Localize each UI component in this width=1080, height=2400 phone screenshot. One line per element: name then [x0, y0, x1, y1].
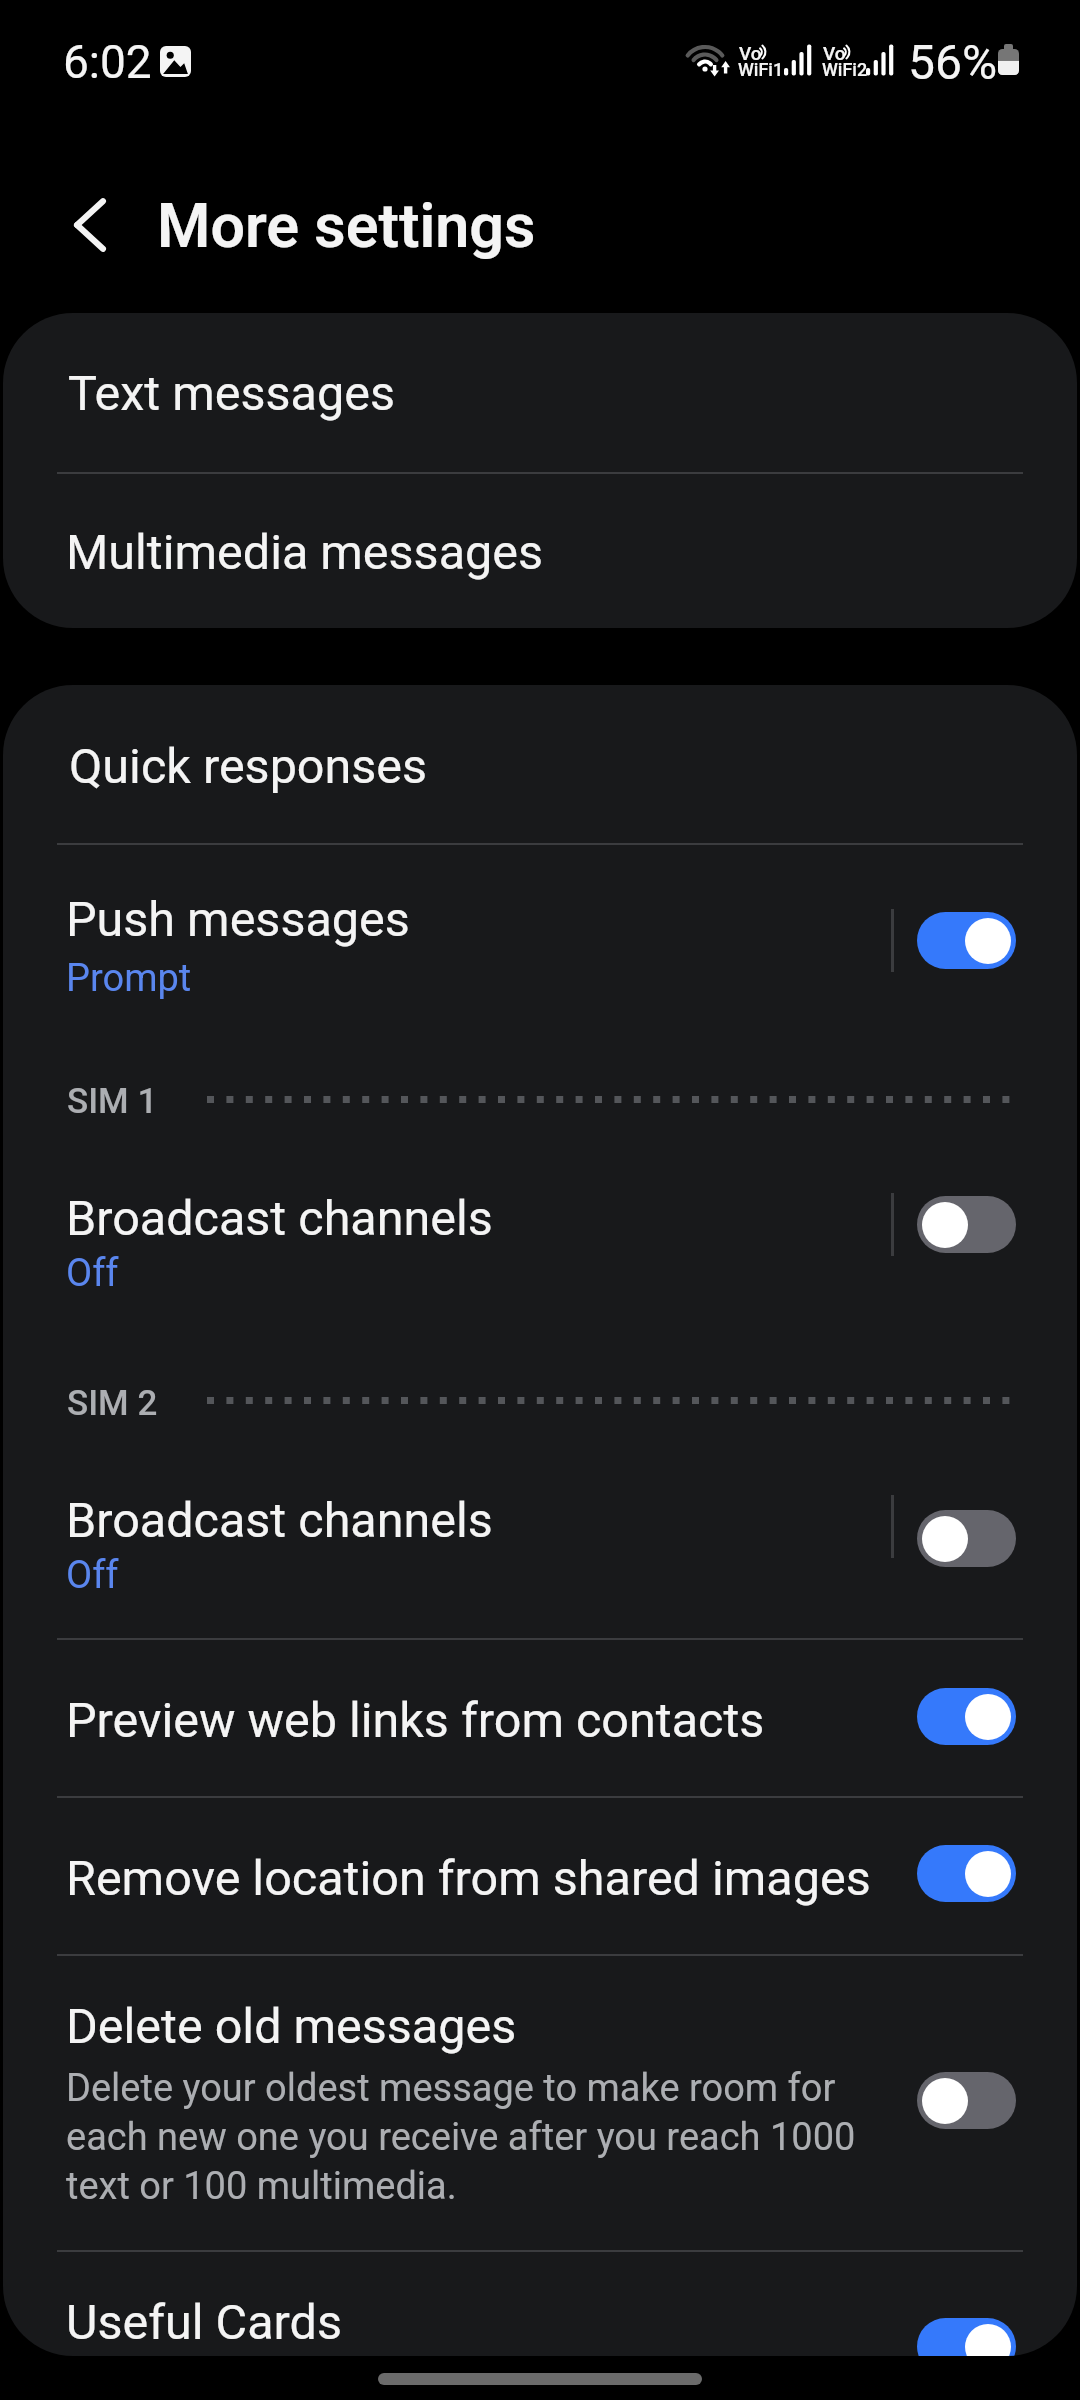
staticText: WiFi2 — [822, 59, 868, 80]
button[interactable]: Switch on — [917, 912, 1016, 969]
button[interactable]: Text messages — [3, 313, 1077, 472]
button[interactable]: Switch off — [917, 1196, 1016, 1253]
staticText: Text messages — [68, 365, 395, 422]
button[interactable]: Useful Cards — [3, 2252, 1077, 2356]
staticText: Delete your oldest message to make room … — [66, 2066, 906, 2208]
staticText: Vo — [739, 42, 762, 64]
button[interactable]: Push messages — [3, 845, 1077, 1085]
button[interactable]: Delete old messages — [3, 1956, 1077, 2250]
staticText: Preview web links from contacts — [66, 1692, 765, 1749]
button[interactable]: Quick responses — [3, 685, 1077, 843]
staticText: Broadcast channels — [66, 1190, 493, 1247]
staticText: 56% — [908, 34, 998, 90]
staticText: Vo — [823, 42, 846, 64]
button[interactable]: Switch off — [917, 2072, 1016, 2129]
button[interactable]: Switch on — [917, 1845, 1016, 1902]
button[interactable]: Switch on — [917, 2318, 1016, 2356]
staticText: Push messages — [66, 891, 410, 948]
staticText: Off — [66, 1251, 119, 1296]
staticText: WiFi1 — [738, 59, 784, 80]
staticText: SIM 2 — [67, 1383, 158, 1424]
button[interactable]: Preview web links from contacts — [3, 1640, 1077, 1798]
button[interactable]: Switch off — [917, 1510, 1016, 1567]
button[interactable]: Multimedia messages — [3, 474, 1077, 628]
button[interactable]: Back — [47, 182, 133, 268]
button[interactable]: Broadcast channels — [3, 1155, 1077, 1385]
staticText: Prompt — [66, 956, 192, 1001]
staticText: SIM 1 — [67, 1081, 158, 1122]
button[interactable]: Broadcast channels — [3, 1458, 1077, 1635]
staticText: Off — [66, 1553, 119, 1598]
staticText: Remove location from shared images — [66, 1850, 871, 1907]
staticText: Quick responses — [69, 738, 428, 795]
staticText: Useful Cards — [66, 2294, 342, 2351]
button[interactable]: Remove location from shared images — [3, 1798, 1077, 1954]
staticText: 6:02 — [63, 35, 152, 89]
staticText: More settings — [157, 190, 536, 261]
staticText: Delete old messages — [66, 1998, 517, 2055]
button[interactable]: Switch on — [917, 1688, 1016, 1745]
staticText: Broadcast channels — [66, 1492, 493, 1549]
staticText: Multimedia messages — [66, 524, 544, 581]
